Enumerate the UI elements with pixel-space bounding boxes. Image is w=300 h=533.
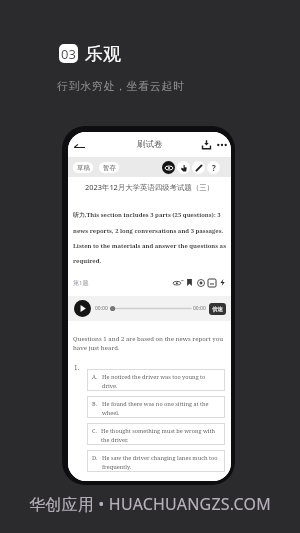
staticText: 2023年12月大学英语四级考试题（三） <box>68 182 231 192</box>
button[interactable]: 暂存 <box>99 162 119 173</box>
staticText: D. <box>92 454 98 462</box>
staticText: 听力,This section includes 3 parts (25 que… <box>73 211 226 265</box>
button[interactable]: B. <box>87 396 225 418</box>
button[interactable]: A. <box>87 369 225 391</box>
staticText: 草稿 <box>77 164 90 172</box>
staticText: He found there was no one sitting at the… <box>102 400 209 416</box>
staticText: 00:00 <box>95 305 108 312</box>
staticText: He thought something must be wrong with … <box>101 427 216 443</box>
button[interactable]: Quick action <box>218 278 227 287</box>
button[interactable]: Notes <box>207 278 216 287</box>
button[interactable]: C. <box>87 423 225 445</box>
button[interactable]: Play <box>74 300 91 317</box>
staticText: 刷试卷 <box>137 139 163 150</box>
staticText: 第1题 <box>73 279 89 287</box>
staticText: He noticed the driver was too young to d… <box>102 373 206 389</box>
staticText: 1. <box>74 363 80 372</box>
staticText: 倍速 <box>212 306 223 313</box>
staticText: He saw the driver changing lanes much to… <box>102 454 218 470</box>
staticText: 暂存 <box>103 164 116 172</box>
button[interactable]: Record <box>196 278 205 287</box>
button[interactable]: More options <box>215 138 228 151</box>
button[interactable]: Back <box>71 137 87 153</box>
staticText: ? <box>212 162 216 173</box>
button[interactable]: Download <box>200 138 213 151</box>
button[interactable]: Annotate <box>192 161 205 174</box>
button[interactable]: Views <box>172 277 183 288</box>
button[interactable]: Preview <box>162 161 175 174</box>
staticText: C. <box>92 427 97 435</box>
staticText: 行到水穷处，坐看云起时 <box>57 79 185 93</box>
button[interactable]: 倍速 <box>209 303 226 315</box>
staticText: Questions 1 and 2 are based on the news … <box>73 334 224 352</box>
button[interactable]: 草稿 <box>73 162 93 173</box>
staticText: 00:00 <box>193 305 206 312</box>
staticText: 华创应用 • HUACHUANGZS.COM <box>0 493 300 515</box>
button[interactable]: Help <box>207 161 220 174</box>
staticText: 乐观 <box>85 43 121 66</box>
button[interactable]: Select <box>177 161 190 174</box>
staticText: A. <box>92 373 98 381</box>
staticText: B. <box>92 400 98 408</box>
button[interactable]: D. <box>87 450 225 472</box>
staticText: 03 <box>61 45 76 63</box>
button[interactable]: Bookmark <box>185 278 194 287</box>
